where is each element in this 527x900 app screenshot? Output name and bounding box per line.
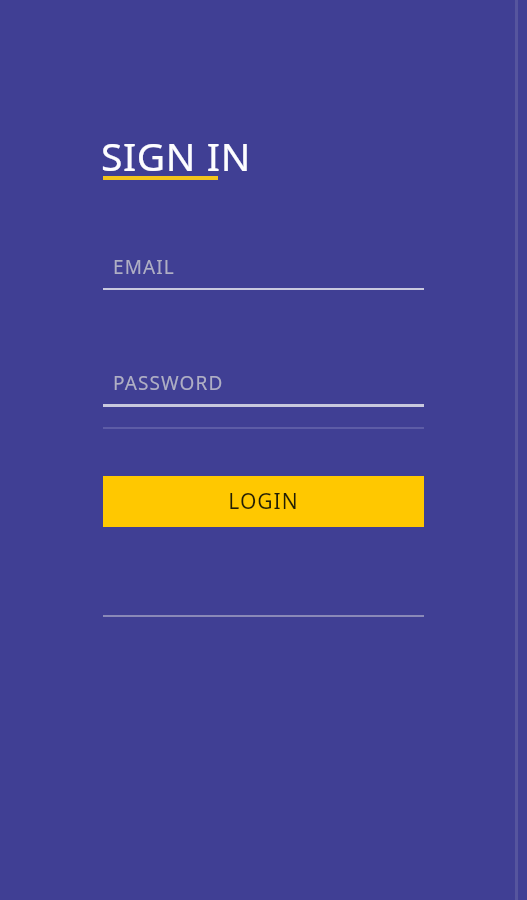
staticText: PASSWORD xyxy=(113,370,224,396)
button[interactable]: EMAIL xyxy=(103,250,424,291)
staticText: SIGN IN xyxy=(101,129,251,182)
button[interactable]: LOGIN xyxy=(103,476,424,527)
staticText: EMAIL xyxy=(113,254,175,280)
button[interactable]: PASSWORD xyxy=(103,366,424,407)
staticText: LOGIN xyxy=(228,487,299,516)
